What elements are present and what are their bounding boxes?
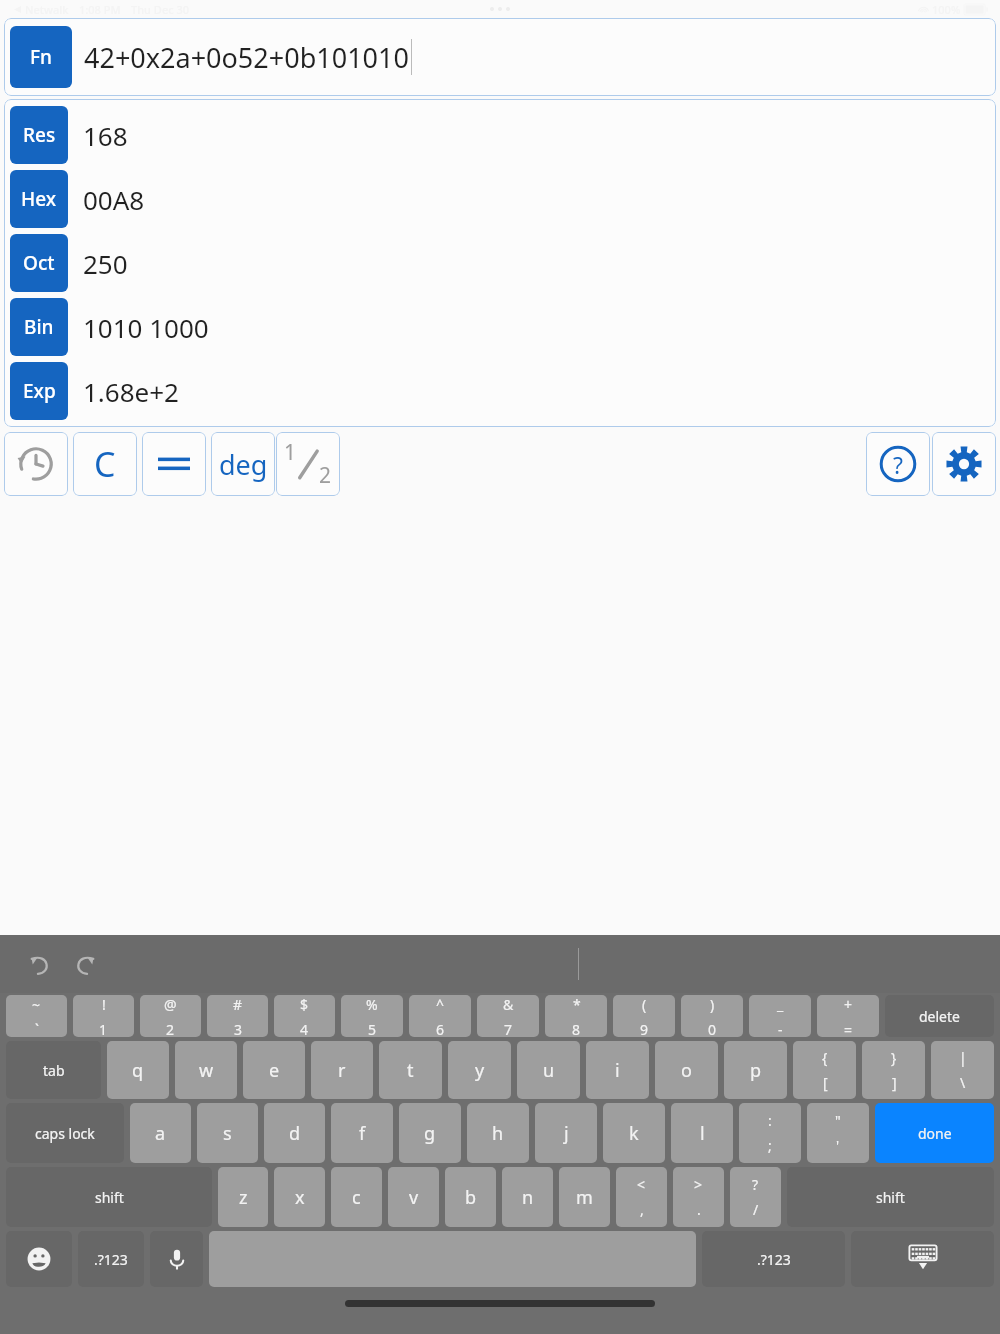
staticText: .?123 [757,1250,791,1269]
staticText: + [844,995,853,1014]
button[interactable]: } [862,1041,925,1099]
button[interactable]: m [559,1167,610,1227]
staticText: Hex [21,186,57,212]
staticText: caps lock [35,1124,95,1143]
button[interactable]: | [931,1041,994,1099]
button[interactable]: Bin [10,295,996,359]
button[interactable]: w [175,1041,237,1099]
button[interactable]: tab [6,1041,101,1099]
button[interactable]: shift [6,1167,212,1227]
button[interactable]: b [445,1167,496,1227]
button[interactable]: + [817,995,879,1037]
button[interactable]: Oct [10,231,996,295]
button[interactable]: r [311,1041,373,1099]
staticText: d [289,1121,301,1146]
button[interactable]: Settings [932,432,996,496]
staticText: 00A8 [83,182,145,217]
button[interactable]: > [673,1167,724,1227]
button[interactable]: j [535,1103,597,1163]
staticText: delete [919,1007,960,1026]
button[interactable]: v [388,1167,439,1227]
staticText: | [959,1048,967,1067]
button[interactable]: & [477,995,539,1037]
button[interactable]: ( [613,995,675,1037]
staticText: 3 [234,1020,243,1037]
staticText: Res [23,122,56,148]
button[interactable]: o [655,1041,718,1099]
button[interactable]: k [603,1103,665,1163]
button[interactable]: s [197,1103,258,1163]
button[interactable]: c [331,1167,382,1227]
staticText: 0 [708,1020,717,1037]
button[interactable]: $ [274,995,335,1037]
button[interactable]: Hide keyboard [851,1231,994,1287]
button[interactable]: .?123 [78,1231,144,1287]
button[interactable]: q [107,1041,169,1099]
button[interactable]: delete [885,995,994,1037]
button[interactable]: done [875,1103,994,1163]
button[interactable]: t [379,1041,442,1099]
button[interactable]: Emoji [6,1231,72,1287]
staticText: - [778,1020,783,1037]
button[interactable]: Clear [73,432,137,496]
button[interactable]: n [502,1167,553,1227]
button[interactable]: : [739,1103,801,1163]
button[interactable]: .?123 [702,1231,845,1287]
button[interactable]: g [399,1103,461,1163]
button[interactable]: ~ [6,995,67,1037]
button[interactable]: Undo [20,944,60,984]
button[interactable]: l [671,1103,733,1163]
button[interactable]: History [4,432,68,496]
button[interactable]: ? [730,1167,781,1227]
staticText: g [424,1121,436,1146]
button[interactable]: Hex [10,167,996,231]
button[interactable]: a [130,1103,191,1163]
button[interactable]: Angle mode degrees [211,432,275,496]
button[interactable]: ) [681,995,743,1037]
button[interactable]: Fraction [276,432,340,496]
button[interactable]: Fn [4,18,996,96]
button[interactable]: Exp [10,359,996,423]
staticText: i [615,1058,620,1083]
staticText: shift [876,1188,905,1207]
button[interactable]: shift [787,1167,994,1227]
button[interactable]: caps lock [6,1103,124,1163]
button[interactable]: p [724,1041,787,1099]
button[interactable]: _ [749,995,811,1037]
button[interactable]: ! [73,995,134,1037]
button[interactable]: % [341,995,403,1037]
button[interactable]: u [517,1041,580,1099]
button[interactable]: @ [140,995,201,1037]
button[interactable]: Equals [142,432,206,496]
button[interactable]: z [218,1167,268,1227]
button[interactable]: ^ [409,995,471,1037]
button[interactable]: " [807,1103,869,1163]
button[interactable]: { [793,1041,856,1099]
button[interactable]: Res [10,103,996,167]
staticText: 2 [166,1020,175,1037]
button[interactable]: Redo [65,944,105,984]
button[interactable]: h [467,1103,529,1163]
staticText: 168 [83,118,128,153]
staticText: . [697,1200,701,1219]
button[interactable]: < [616,1167,667,1227]
button[interactable]: d [264,1103,325,1163]
staticText: Bin [24,314,54,340]
staticText: 5 [368,1020,377,1037]
staticText: m [576,1185,593,1210]
button[interactable]: i [586,1041,649,1099]
button[interactable]: Help [866,432,930,496]
staticText: v [409,1185,419,1210]
button[interactable]: e [243,1041,305,1099]
staticText: ( [642,995,647,1014]
button[interactable]: y [448,1041,511,1099]
button[interactable]: * [545,995,607,1037]
staticText: , [640,1200,644,1219]
button[interactable]: # [207,995,268,1037]
button[interactable]: x [274,1167,325,1227]
staticText: 1010 1000 [83,310,209,345]
button[interactable]: Voice input [150,1231,203,1287]
button[interactable]: f [331,1103,393,1163]
